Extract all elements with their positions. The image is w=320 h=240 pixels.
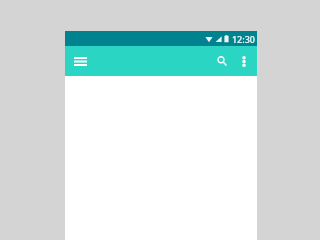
button[interactable]: Search	[211, 50, 233, 72]
button[interactable]: More options	[233, 50, 255, 72]
staticText: 12:30	[231, 33, 255, 45]
button[interactable]: Open navigation menu	[68, 49, 92, 73]
